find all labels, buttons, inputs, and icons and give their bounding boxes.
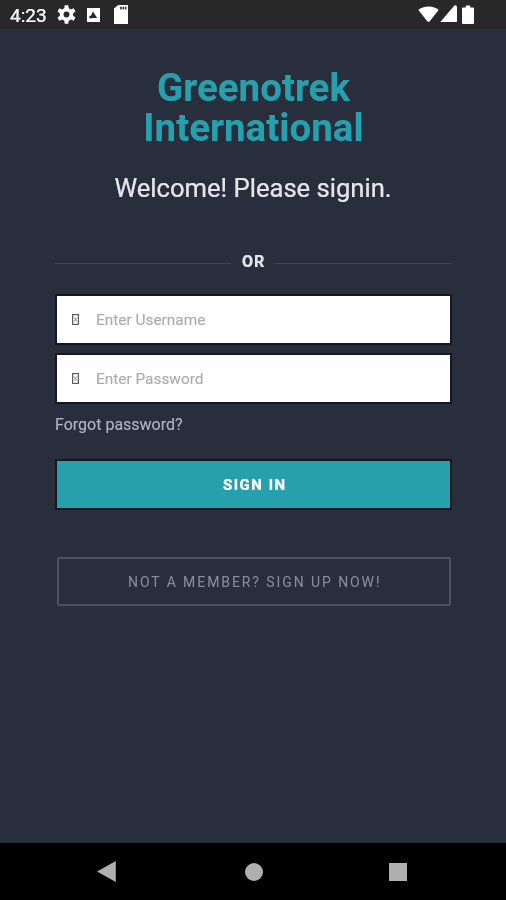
staticText: OR — [242, 252, 266, 271]
staticText: 4:23 — [10, 4, 47, 26]
staticText: Enter Username — [96, 311, 206, 329]
button[interactable]: Recent apps — [370, 843, 426, 900]
button[interactable]: Forgot password? — [51, 412, 187, 437]
button[interactable]: Back — [78, 843, 134, 900]
other: Settings — [57, 5, 76, 24]
staticText: SIGN IN — [223, 476, 287, 494]
button[interactable]: NOT A MEMBER? SIGN UP NOW! — [57, 557, 451, 606]
button[interactable]: Home — [226, 843, 282, 900]
button[interactable]: SIGN IN — [57, 461, 450, 508]
staticText: Enter Password — [96, 370, 204, 388]
button[interactable]: Enter Username — [57, 296, 450, 343]
button[interactable]: Enter Password — [57, 355, 450, 402]
staticText: Greenotrek International — [143, 65, 364, 151]
staticText: NOT A MEMBER? SIGN UP NOW! — [128, 574, 382, 590]
staticText: Welcome! Please signin. — [114, 173, 392, 203]
